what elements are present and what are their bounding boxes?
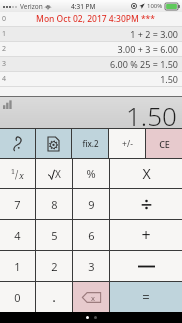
staticText: 0 bbox=[2, 14, 11, 24]
button[interactable]: 4 bbox=[0, 72, 182, 86]
staticText: 3 bbox=[2, 59, 11, 69]
button[interactable]: 9 bbox=[73, 189, 109, 219]
button[interactable]: % bbox=[73, 159, 109, 188]
staticText: x bbox=[91, 293, 95, 303]
button[interactable]: Integral functions bbox=[0, 129, 35, 158]
button[interactable]: One over x bbox=[0, 159, 35, 188]
staticText: fix.2 bbox=[82, 138, 99, 149]
staticText: X bbox=[142, 164, 151, 183]
button[interactable]: 5 bbox=[36, 220, 72, 250]
button[interactable]: CE bbox=[146, 129, 182, 158]
button[interactable]: Backspace bbox=[73, 282, 109, 312]
staticText: 5 bbox=[51, 228, 58, 243]
staticText: 1.50 bbox=[126, 98, 177, 128]
staticText: 100% bbox=[147, 2, 163, 10]
staticText: Verizon bbox=[20, 2, 43, 11]
button[interactable]: 4 bbox=[0, 220, 35, 250]
staticText: 4 bbox=[14, 228, 21, 243]
staticText: 0 bbox=[14, 290, 21, 305]
button[interactable]: 0 bbox=[0, 12, 182, 26]
button[interactable]: 8 bbox=[36, 189, 72, 219]
staticText: 4:31 PM bbox=[71, 2, 96, 11]
staticText: . bbox=[52, 290, 56, 305]
button[interactable]: Minus bbox=[110, 251, 182, 281]
button[interactable]: 1 bbox=[0, 251, 35, 281]
staticText: = bbox=[142, 288, 150, 306]
staticText: 1 bbox=[14, 259, 21, 274]
staticText: X bbox=[55, 167, 61, 181]
staticText: + bbox=[141, 224, 151, 246]
button[interactable]: X bbox=[110, 159, 182, 188]
staticText: 6 bbox=[88, 228, 95, 243]
button[interactable]: 6 bbox=[73, 220, 109, 250]
button[interactable]: fix.2 bbox=[72, 129, 108, 158]
staticText: 6.00 % 25 = 1.50 bbox=[11, 58, 178, 70]
staticText: 4 bbox=[2, 74, 11, 84]
button[interactable]: 2 bbox=[0, 42, 182, 56]
button[interactable]: +/- bbox=[109, 129, 145, 158]
button[interactable]: Divide bbox=[110, 189, 182, 219]
staticText: 9 bbox=[88, 197, 95, 212]
staticText: 1 bbox=[2, 29, 11, 39]
staticText: 2 bbox=[51, 259, 58, 274]
button[interactable]: 7 bbox=[0, 189, 35, 219]
staticText: 1 + 2 = 3.00 bbox=[11, 28, 178, 40]
staticText: CE bbox=[159, 138, 170, 150]
staticText: 2 bbox=[2, 44, 11, 54]
staticText: 8 bbox=[51, 197, 58, 212]
button[interactable]: Settings bbox=[36, 129, 71, 158]
button[interactable]: 0 bbox=[0, 282, 35, 312]
button[interactable]: 2 bbox=[36, 251, 72, 281]
button[interactable]: 3 bbox=[73, 251, 109, 281]
button[interactable]: + bbox=[110, 220, 182, 250]
button[interactable]: . bbox=[36, 282, 72, 312]
staticText: Mon Oct 02, 2017 4:30PM *** bbox=[11, 13, 180, 25]
staticText: +/- bbox=[122, 138, 133, 150]
staticText: 7 bbox=[14, 197, 21, 212]
button[interactable]: = bbox=[110, 282, 182, 312]
staticText: 1.50 bbox=[11, 73, 178, 85]
other: Memory bbox=[3, 100, 12, 109]
button[interactable]: Square root bbox=[36, 159, 72, 188]
staticText: % bbox=[86, 166, 96, 181]
staticText: 3.00 + 3 = 6.00 bbox=[11, 43, 178, 55]
button[interactable]: 3 bbox=[0, 57, 182, 71]
staticText: x bbox=[19, 169, 24, 181]
button[interactable]: 1 bbox=[0, 27, 182, 41]
staticText: 1 bbox=[11, 167, 15, 177]
staticText: 3 bbox=[88, 259, 95, 274]
staticText: / bbox=[15, 166, 19, 181]
